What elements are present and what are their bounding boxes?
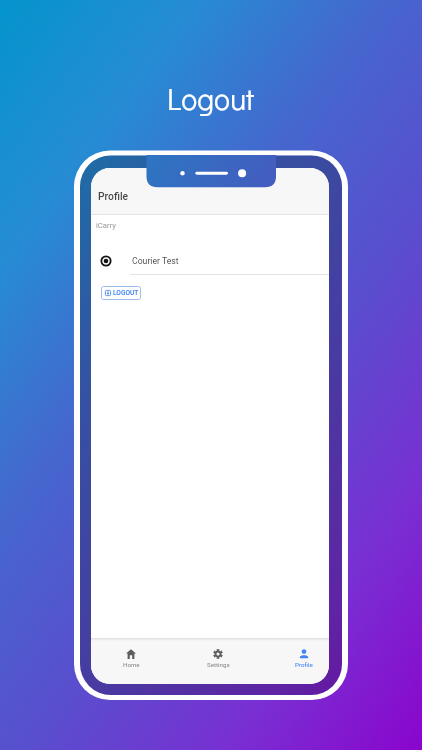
staticText: Settings (207, 661, 230, 668)
button[interactable]: Home tab (101, 638, 161, 684)
button[interactable] (91, 244, 329, 274)
staticText: LOGOUT (113, 289, 139, 297)
other: Logout icon (105, 290, 111, 296)
staticText: Home (123, 661, 140, 668)
button[interactable]: Settings tab (188, 638, 248, 684)
button[interactable]: Logout icon (101, 286, 141, 300)
staticText: Courier Test (132, 256, 179, 266)
button[interactable] (91, 168, 329, 214)
button[interactable]: Profile tab (274, 638, 329, 684)
staticText: Profile (98, 190, 129, 202)
staticText: Profile (295, 661, 313, 668)
staticText: iCarry (96, 221, 116, 230)
staticText: Logout (167, 79, 255, 118)
